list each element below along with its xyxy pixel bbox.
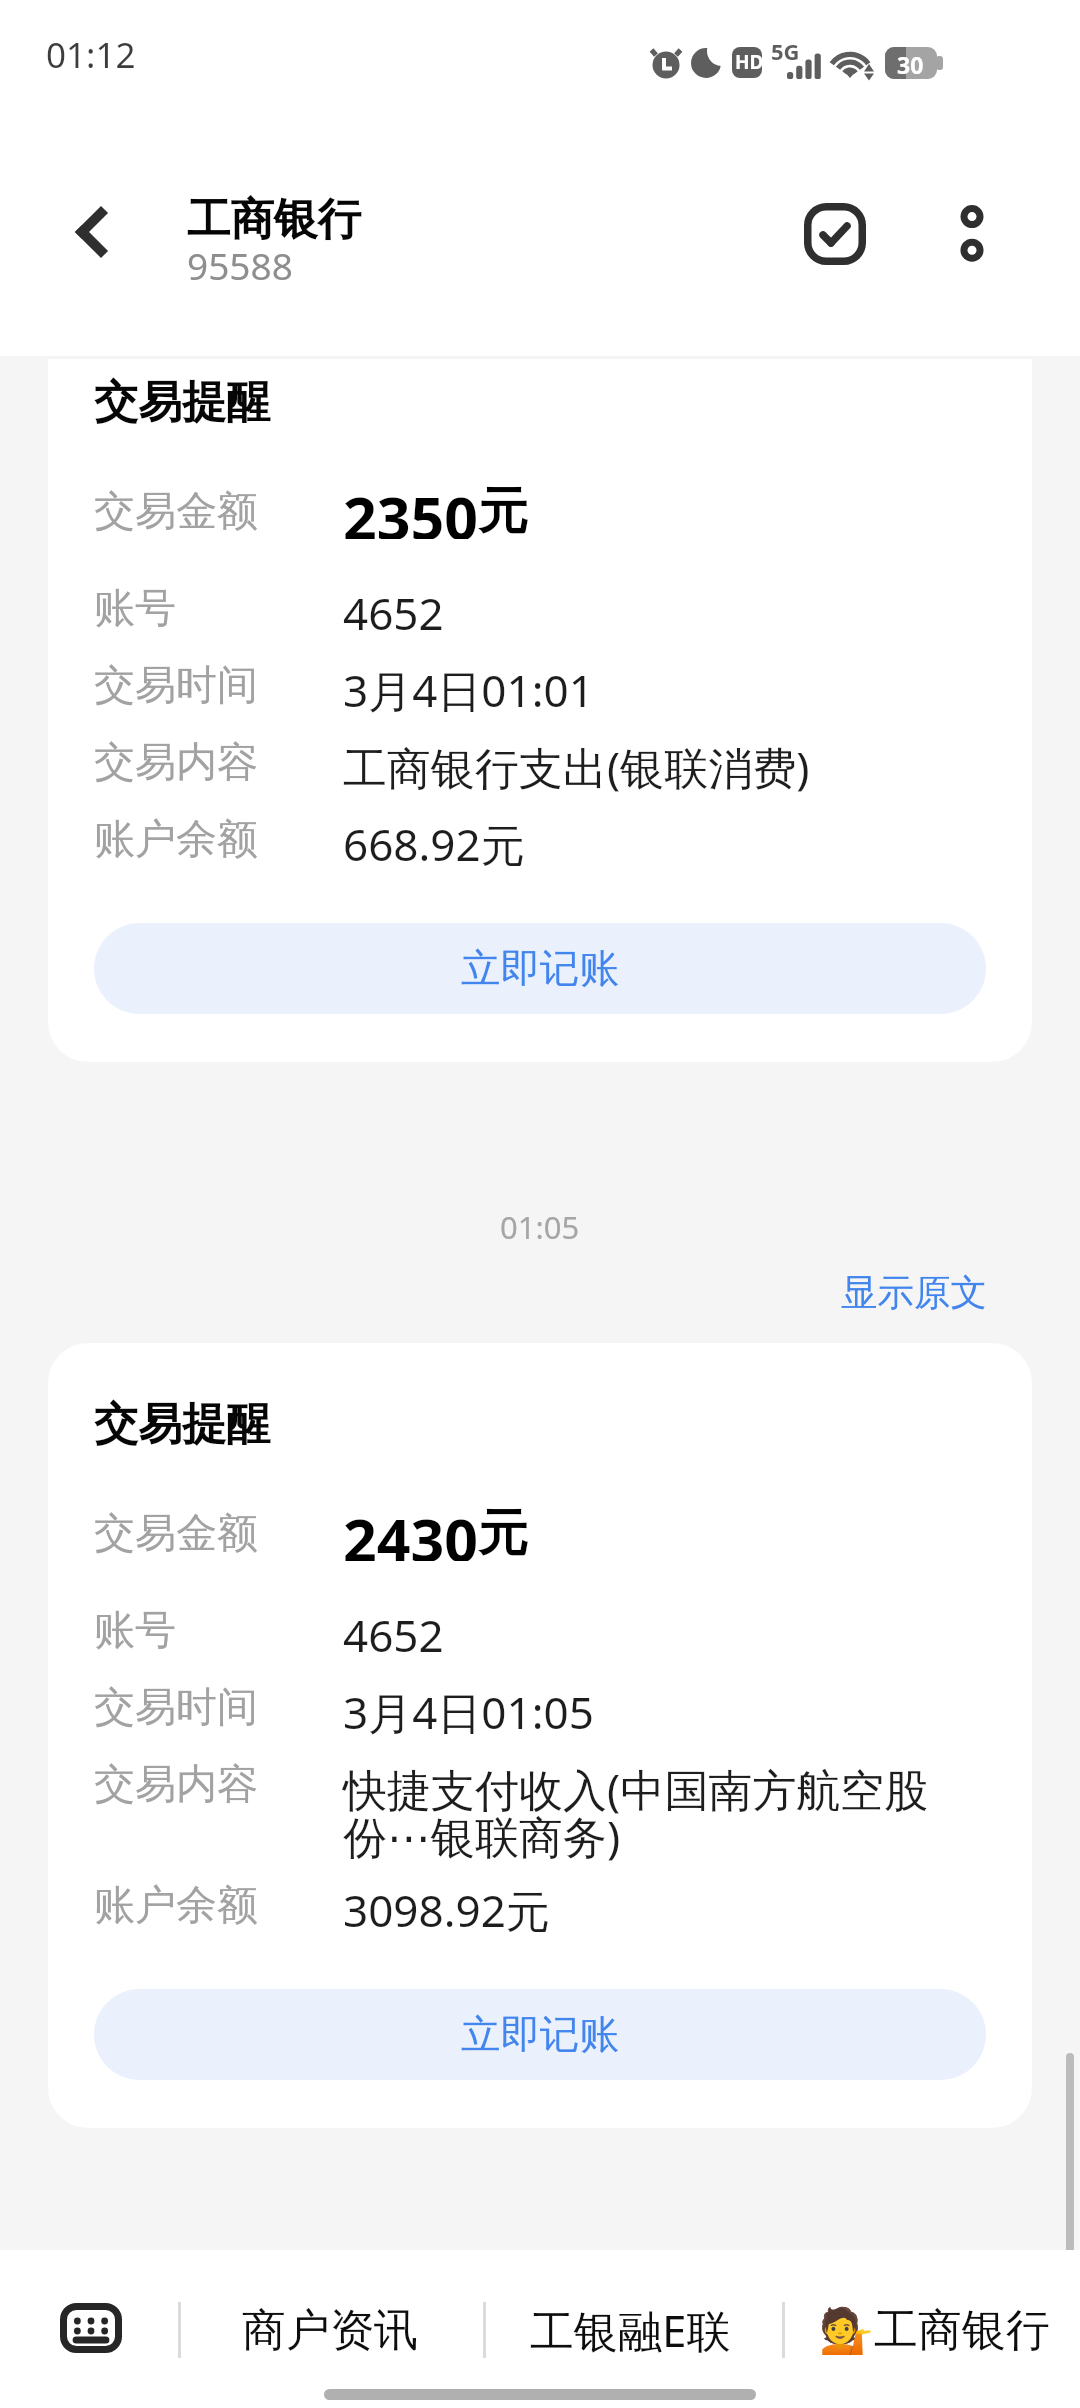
- staticText: 3月4日01:05: [343, 1682, 594, 1742]
- staticText: 交易金额: [94, 1508, 258, 1560]
- staticText: 交易提醒: [94, 375, 270, 430]
- staticText: 元: [478, 480, 528, 542]
- staticText: 交易时间: [94, 1682, 343, 1734]
- staticText: 交易时间: [94, 660, 343, 712]
- button[interactable]: 商户资讯: [200, 2276, 460, 2384]
- staticText: 01:12: [46, 31, 136, 79]
- button[interactable]: 显示原文: [841, 1270, 987, 1316]
- button[interactable]: 立即记账: [94, 923, 986, 1014]
- button[interactable]: 交易提醒: [48, 1343, 1032, 2128]
- staticText: 3月4日01:01: [343, 660, 594, 720]
- button[interactable]: More options: [918, 178, 1026, 286]
- staticText: 95588: [187, 240, 293, 290]
- button[interactable]: 立即记账: [94, 1989, 986, 2080]
- staticText: 4652: [343, 583, 444, 643]
- staticText: 工商银行: [874, 2303, 1050, 2358]
- staticText: 账号: [94, 1605, 343, 1657]
- staticText: 5G: [771, 36, 800, 66]
- button[interactable]: Back: [44, 178, 152, 286]
- staticText: 账户余额: [94, 1880, 343, 1932]
- staticText: 交易内容: [94, 1759, 343, 1811]
- staticText: 2350: [343, 477, 478, 539]
- button[interactable]: 💁: [798, 2276, 1070, 2384]
- staticText: HD: [735, 49, 764, 75]
- staticText: 显示原文: [841, 1270, 987, 1316]
- staticText: 01:05: [500, 1206, 580, 1248]
- staticText: 2430: [343, 1499, 478, 1561]
- staticText: 工商银行: [187, 192, 361, 247]
- button[interactable]: 交易提醒: [48, 359, 1032, 1062]
- button[interactable]: Keyboard: [51, 2266, 131, 2390]
- staticText: 元: [478, 1502, 528, 1564]
- staticText: 份⋯银联商务): [343, 1806, 621, 1866]
- staticText: 立即记账: [461, 944, 619, 994]
- staticText: 交易金额: [94, 486, 258, 538]
- staticText: 账号: [94, 583, 343, 635]
- staticText: 快捷支付收入(中国南方航空股: [343, 1759, 929, 1819]
- staticText: 立即记账: [461, 2010, 619, 2060]
- staticText: 668.92元: [343, 814, 525, 874]
- button[interactable]: Select messages: [781, 180, 889, 288]
- staticText: 交易内容: [94, 737, 343, 789]
- staticText: 4652: [343, 1605, 444, 1665]
- staticText: 💁: [819, 2305, 874, 2357]
- staticText: 3098.92元: [343, 1880, 550, 1940]
- staticText: 工商银行支出(银联消费): [343, 737, 810, 797]
- staticText: 商户资讯: [242, 2303, 418, 2358]
- staticText: 交易提醒: [94, 1397, 270, 1452]
- staticText: 30: [897, 49, 924, 80]
- staticText: 账户余额: [94, 814, 343, 866]
- staticText: 工银融E联: [530, 2300, 731, 2360]
- button[interactable]: 工银融E联: [500, 2276, 760, 2384]
